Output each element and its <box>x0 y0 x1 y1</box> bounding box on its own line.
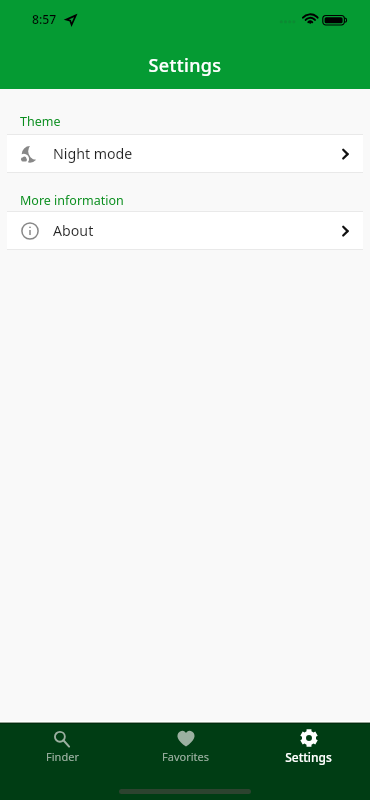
staticText: Settings <box>285 749 332 765</box>
staticText: Finder <box>46 749 79 764</box>
button[interactable]: Finder <box>0 724 124 764</box>
staticText: 8:57 <box>32 11 57 28</box>
staticText: Settings <box>0 53 370 78</box>
staticText: Theme <box>20 113 61 130</box>
button[interactable]: Favorites <box>124 724 247 764</box>
staticText: Favorites <box>162 749 209 764</box>
button[interactable]: Settings <box>247 724 370 765</box>
button[interactable]: About <box>7 212 363 249</box>
staticText: More information <box>20 192 124 209</box>
staticText: About <box>53 221 94 240</box>
button[interactable]: Night mode <box>7 135 363 172</box>
staticText: Night mode <box>53 144 133 163</box>
